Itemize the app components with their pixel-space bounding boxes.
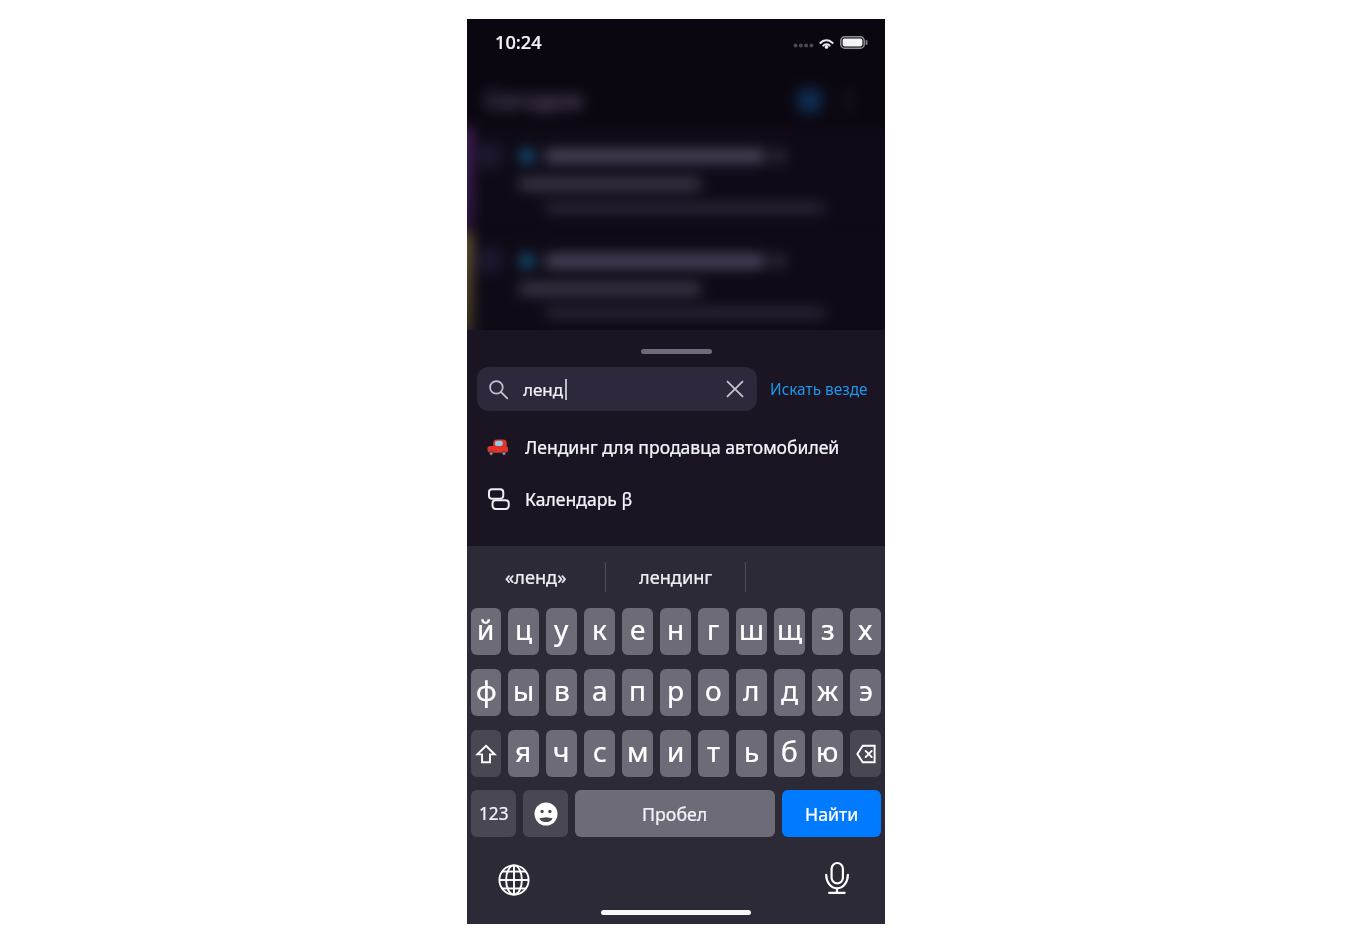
button[interactable]: ь [736, 730, 767, 777]
button[interactable]: Пробел [575, 790, 775, 837]
button[interactable]: д [774, 669, 805, 716]
button[interactable]: ц [508, 608, 539, 655]
staticText: ь [744, 732, 760, 770]
staticText: Сегодня [485, 84, 582, 116]
staticText: ф [476, 671, 497, 709]
button[interactable]: в [546, 669, 577, 716]
button[interactable]: Change keyboard [497, 863, 531, 897]
button[interactable]: е [622, 608, 653, 655]
button[interactable]: п [622, 669, 653, 716]
staticText: г [707, 610, 720, 648]
button[interactable]: ж [812, 669, 843, 716]
button[interactable]: з [812, 608, 843, 655]
button[interactable]: я [508, 730, 539, 777]
button[interactable]: м [622, 730, 653, 777]
button[interactable]: ленд [477, 367, 757, 411]
staticText: Пробел [642, 802, 708, 826]
staticText: Календарь β [525, 487, 633, 511]
staticText: э [859, 671, 873, 709]
button[interactable]: Dictation [820, 862, 854, 896]
button[interactable]: Лендинг для продавца автомобилей [467, 425, 885, 469]
staticText: ю [816, 732, 839, 770]
button[interactable]: 123 [471, 790, 516, 837]
button[interactable]: щ [774, 608, 805, 655]
button[interactable]: г [698, 608, 729, 655]
staticText: ч [553, 732, 570, 770]
button[interactable]: н [660, 608, 691, 655]
staticText: щ [777, 610, 803, 648]
staticText: 123 [479, 802, 509, 825]
button[interactable]: Найти [782, 790, 881, 837]
staticText: д [781, 671, 798, 709]
button[interactable]: лендинг [606, 546, 745, 608]
staticText: «ленд» [505, 565, 567, 590]
staticText: м [627, 732, 649, 770]
staticText: я [515, 732, 532, 770]
staticText: р [667, 671, 685, 709]
staticText: ц [515, 610, 533, 648]
button[interactable]: х [850, 608, 881, 655]
button[interactable]: а [584, 669, 615, 716]
staticText: з [821, 610, 835, 648]
staticText: Найти [805, 802, 859, 826]
button[interactable]: й [471, 608, 501, 655]
button[interactable]: т [698, 730, 729, 777]
staticText: х [858, 610, 873, 648]
staticText: н [667, 610, 685, 648]
staticText: е [630, 610, 646, 648]
button[interactable]: Shift [471, 730, 501, 777]
button[interactable]: ф [471, 669, 501, 716]
staticText: к [592, 610, 607, 648]
button[interactable]: с [584, 730, 615, 777]
button[interactable]: о [698, 669, 729, 716]
button[interactable]: к [584, 608, 615, 655]
staticText: т [707, 732, 721, 770]
button[interactable]: у [546, 608, 577, 655]
staticText: у [554, 610, 569, 648]
button[interactable]: р [660, 669, 691, 716]
button[interactable]: Календарь β [467, 477, 885, 521]
staticText: лендинг [639, 565, 713, 590]
button[interactable]: Backspace [850, 730, 881, 777]
staticText: б [781, 732, 798, 770]
button[interactable]: ч [546, 730, 577, 777]
staticText: Лендинг для продавца автомобилей [525, 435, 840, 459]
staticText: ленд [523, 378, 564, 401]
staticText: ш [739, 610, 765, 648]
button[interactable]: Emoji [523, 790, 568, 837]
staticText: а [592, 671, 608, 709]
staticText: 10:24 [495, 30, 542, 55]
button[interactable]: «ленд» [467, 546, 605, 608]
staticText: о [705, 671, 722, 709]
staticText: й [477, 610, 495, 648]
button[interactable]: и [660, 730, 691, 777]
button[interactable]: ю [812, 730, 843, 777]
staticText: с [593, 732, 607, 770]
staticText: и [667, 732, 685, 770]
staticText: п [629, 671, 646, 709]
staticText: ж [817, 671, 839, 709]
button[interactable]: ы [508, 669, 539, 716]
button[interactable]: Искать везде [770, 379, 868, 400]
staticText: ы [513, 671, 535, 709]
staticText: в [554, 671, 570, 709]
button[interactable]: л [736, 669, 767, 716]
staticText: л [743, 671, 760, 709]
button[interactable]: ш [736, 608, 767, 655]
button[interactable]: б [774, 730, 805, 777]
button[interactable]: э [850, 669, 881, 716]
staticText: Искать везде [770, 379, 868, 400]
button[interactable]: Clear [724, 378, 746, 400]
